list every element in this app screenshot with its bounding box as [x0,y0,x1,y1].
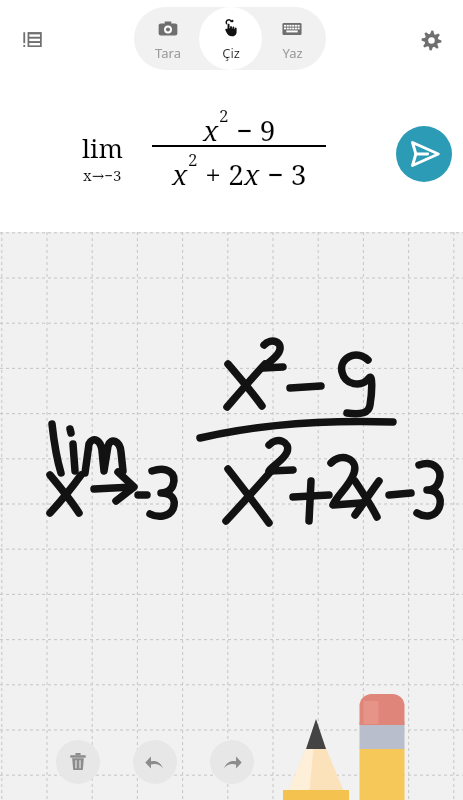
button[interactable]: Gönder [396,126,452,182]
button[interactable]: Geçmiş [11,18,55,62]
staticText: x [203,111,219,149]
staticText: 2 [188,148,198,171]
button[interactable]: Silgi [358,687,408,800]
button[interactable]: Ayarlar [409,18,453,62]
button[interactable]: Kalem [284,714,348,800]
staticText: 2 [219,104,229,127]
button[interactable]: Geri al [133,740,177,784]
button[interactable]: Sil [56,740,100,784]
staticText: − 9 [229,111,276,149]
staticText: x→−3 [83,165,122,185]
button[interactable]: Çiz [199,7,262,70]
staticText: lim [82,130,123,165]
staticText: Yaz [282,44,303,62]
button[interactable]: İleri al [210,740,254,784]
staticText: x [244,155,260,193]
button[interactable]: Yaz [261,7,323,70]
staticText: x [172,155,188,193]
staticText: Çiz [222,44,240,62]
button[interactable]: Tara [137,7,199,70]
staticText: + 2 [198,155,244,193]
staticText: Tara [155,44,181,62]
staticText: − 3 [260,155,307,193]
